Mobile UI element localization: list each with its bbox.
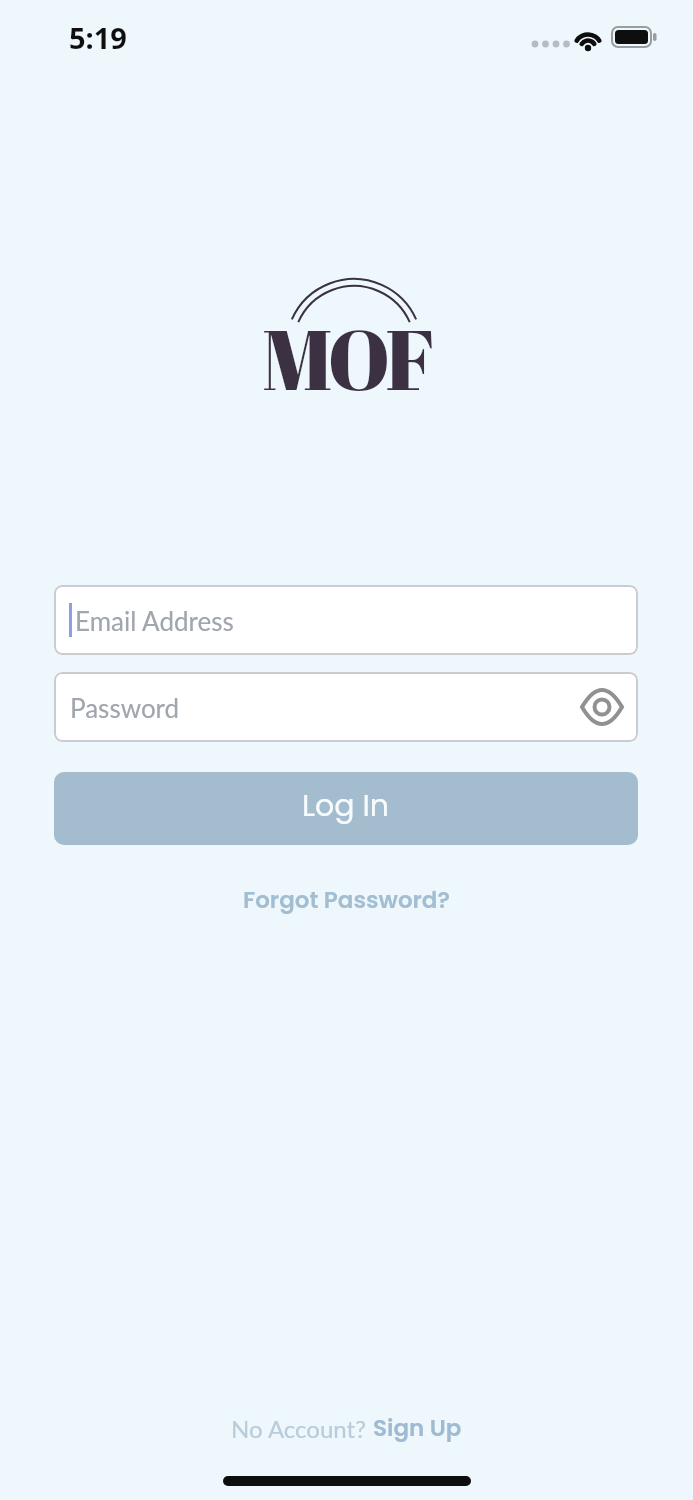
staticText: MOF [262, 301, 431, 414]
button[interactable]: Forgot Password? [243, 884, 450, 916]
staticText: Log In [302, 785, 390, 827]
button[interactable]: Log In [54, 772, 638, 845]
staticText: Password [70, 692, 180, 723]
button[interactable]: Email Address [54, 585, 638, 655]
button[interactable] [581, 689, 623, 725]
staticText: No Account? [231, 1414, 373, 1443]
button[interactable]: No Account? [231, 1412, 462, 1444]
staticText: Email Address [75, 605, 234, 636]
staticText: 5:19 [69, 18, 127, 57]
button[interactable]: Password [54, 672, 638, 742]
staticText: Sign Up [373, 1412, 462, 1444]
